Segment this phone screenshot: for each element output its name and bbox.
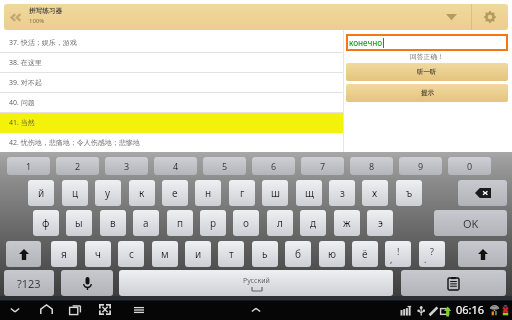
- button[interactable]: п: [167, 210, 193, 236]
- button[interactable]: Symbols: [4, 270, 54, 296]
- button[interactable]: ш: [262, 180, 288, 206]
- button[interactable]: 40. 问题: [0, 93, 343, 113]
- button[interactable]: Voice input: [61, 270, 113, 296]
- button[interactable]: 1: [7, 157, 50, 175]
- staticText: х: [372, 186, 378, 200]
- button[interactable]: Space: [119, 270, 393, 296]
- button[interactable]: м: [152, 241, 178, 267]
- staticText: я: [61, 247, 67, 261]
- button[interactable]: !: [385, 241, 411, 267]
- button[interactable]: е: [162, 180, 188, 206]
- staticText: ъ: [406, 186, 413, 200]
- button[interactable]: ?: [419, 241, 445, 267]
- button[interactable]: 4: [154, 157, 197, 175]
- button[interactable]: я: [51, 241, 77, 267]
- button[interactable]: ж: [334, 210, 360, 236]
- button[interactable]: конечно: [346, 34, 508, 51]
- button[interactable]: ц: [62, 180, 88, 206]
- button[interactable]: Back: [1, 299, 29, 320]
- staticText: л: [277, 216, 283, 230]
- staticText: в: [110, 216, 116, 230]
- button[interactable]: х: [362, 180, 388, 206]
- button[interactable]: 7: [301, 157, 344, 175]
- button[interactable]: с: [118, 241, 144, 267]
- button[interactable]: д: [300, 210, 326, 236]
- button[interactable]: ъ: [396, 180, 422, 206]
- button[interactable]: Shift: [6, 241, 41, 267]
- button[interactable]: ф: [33, 210, 59, 236]
- staticText: .: [424, 253, 427, 265]
- button[interactable]: л: [267, 210, 293, 236]
- button[interactable]: OK: [434, 210, 507, 236]
- button[interactable]: 0: [448, 157, 491, 175]
- button[interactable]: ь: [252, 241, 278, 267]
- button[interactable]: н: [195, 180, 221, 206]
- staticText: 提示: [421, 89, 434, 97]
- button[interactable]: э: [367, 210, 393, 236]
- staticText: и: [195, 247, 202, 261]
- staticText: к: [139, 186, 145, 200]
- button[interactable]: 5: [203, 157, 246, 175]
- button[interactable]: 42. 忧伤地，悲痛地；令人伤感地；悲惨地: [0, 133, 343, 153]
- staticText: ш: [271, 186, 280, 200]
- staticText: п: [177, 216, 184, 230]
- button[interactable]: 听一听: [346, 63, 508, 81]
- button[interactable]: Settings: [472, 4, 508, 30]
- button[interactable]: г: [229, 180, 255, 206]
- staticText: 06:16: [456, 302, 485, 317]
- button[interactable]: у: [95, 180, 121, 206]
- button[interactable]: 提示: [346, 84, 508, 102]
- staticText: ?123: [17, 276, 41, 291]
- staticText: е: [172, 186, 178, 200]
- button[interactable]: ы: [66, 210, 92, 236]
- button[interactable]: 6: [252, 157, 295, 175]
- staticText: й: [38, 186, 45, 200]
- button[interactable]: 41. 当然: [0, 113, 343, 133]
- button[interactable]: Shift: [458, 241, 507, 267]
- button[interactable]: Backspace: [458, 180, 507, 206]
- staticText: у: [105, 186, 111, 200]
- staticText: ю: [328, 247, 336, 261]
- button[interactable]: ч: [85, 241, 111, 267]
- staticText: т: [229, 247, 234, 261]
- button[interactable]: Home: [32, 299, 60, 320]
- button[interactable]: а: [133, 210, 159, 236]
- button[interactable]: Screenshot: [91, 299, 119, 320]
- staticText: 拼写练习器: [29, 7, 62, 15]
- button[interactable]: Recents: [61, 299, 89, 320]
- button[interactable]: 9: [399, 157, 442, 175]
- button[interactable]: р: [200, 210, 226, 236]
- button[interactable]: ю: [319, 241, 345, 267]
- button[interactable]: 39. 对不起: [0, 73, 343, 93]
- button[interactable]: 3: [105, 157, 148, 175]
- button[interactable]: к: [129, 180, 155, 206]
- button[interactable]: Dropdown: [431, 4, 471, 30]
- staticText: м: [161, 247, 169, 261]
- staticText: ?: [430, 245, 434, 257]
- button[interactable]: 37. 快活；娱乐，游戏: [0, 33, 343, 53]
- button[interactable]: й: [28, 180, 54, 206]
- staticText: 7: [320, 160, 326, 172]
- staticText: щ: [305, 186, 314, 200]
- button[interactable]: з: [329, 180, 355, 206]
- button[interactable]: в: [100, 210, 126, 236]
- button[interactable]: т: [218, 241, 244, 267]
- staticText: ч: [95, 247, 101, 261]
- button[interactable]: и: [185, 241, 211, 267]
- staticText: 3: [124, 160, 130, 172]
- button[interactable]: 8: [350, 157, 393, 175]
- button[interactable]: о: [233, 210, 259, 236]
- button[interactable]: Expand: [242, 299, 270, 320]
- button[interactable]: ё: [352, 241, 378, 267]
- button[interactable]: щ: [296, 180, 322, 206]
- button[interactable]: б: [285, 241, 311, 267]
- button[interactable]: Menu: [125, 299, 153, 320]
- staticText: 9: [418, 160, 424, 172]
- staticText: 5: [222, 160, 228, 172]
- staticText: 4: [173, 160, 179, 172]
- staticText: 41. 当然: [9, 118, 35, 128]
- button[interactable]: 2: [56, 157, 99, 175]
- button[interactable]: Clipboard: [401, 270, 506, 296]
- button[interactable]: 38. 在这里: [0, 53, 343, 73]
- button[interactable]: Back: [4, 4, 28, 30]
